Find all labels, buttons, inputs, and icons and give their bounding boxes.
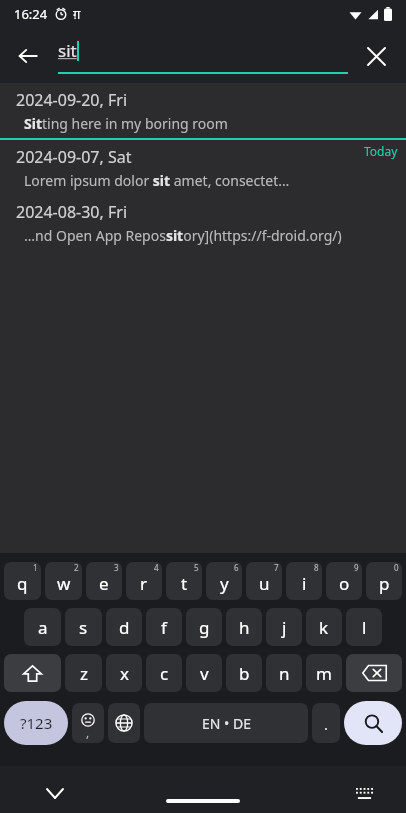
- staticText: m: [316, 662, 332, 685]
- staticText: 7: [274, 562, 279, 573]
- button[interactable]: r: [126, 562, 162, 600]
- button[interactable]: EN • DE: [144, 703, 308, 743]
- button[interactable]: o: [326, 562, 362, 600]
- staticText: sit: [58, 39, 77, 62]
- staticText: z: [80, 662, 88, 685]
- staticText: w: [57, 572, 71, 595]
- staticText: g: [199, 616, 210, 639]
- staticText: 0: [394, 562, 399, 573]
- staticText: a: [38, 616, 48, 639]
- staticText: r: [140, 572, 148, 595]
- button[interactable]: Hide keyboard: [38, 776, 72, 810]
- button[interactable]: a: [24, 608, 61, 646]
- staticText: 6: [234, 562, 239, 573]
- staticText: j: [282, 616, 287, 639]
- button[interactable]: Keyboard settings: [349, 778, 379, 808]
- staticText: 4: [154, 562, 159, 573]
- button[interactable]: g: [186, 608, 222, 646]
- staticText: 2024-09-20, Fri: [16, 89, 128, 111]
- button[interactable]: ?123: [4, 701, 68, 745]
- button[interactable]: Clear: [356, 36, 396, 76]
- staticText: 3: [114, 562, 119, 573]
- staticText: 9: [354, 562, 359, 573]
- staticText: .: [324, 714, 329, 734]
- button[interactable]: t: [166, 562, 202, 600]
- button[interactable]: .: [312, 703, 340, 743]
- staticText: v: [200, 662, 209, 685]
- staticText: k: [319, 616, 329, 639]
- staticText: f: [161, 616, 167, 639]
- button[interactable]: e: [86, 562, 122, 600]
- staticText: p: [379, 572, 390, 595]
- staticText: 2024-08-30, Fri: [16, 201, 128, 223]
- staticText: i: [302, 572, 307, 595]
- staticText: EN • DE: [202, 714, 251, 733]
- button[interactable]: Switch language: [108, 703, 140, 743]
- button[interactable]: d: [106, 608, 142, 646]
- button[interactable]: v: [186, 654, 222, 692]
- button[interactable]: h: [226, 608, 262, 646]
- staticText: x: [120, 662, 129, 685]
- button[interactable]: 2024-08-30, Fri: [0, 195, 406, 250]
- button[interactable]: z: [65, 654, 102, 692]
- button[interactable]: Backspace: [346, 654, 402, 692]
- staticText: 2024-09-07, Sat: [16, 146, 132, 168]
- button[interactable]: Back: [10, 38, 46, 74]
- button[interactable]: m: [306, 654, 342, 692]
- staticText: b: [239, 662, 250, 685]
- staticText: o: [339, 572, 350, 595]
- button[interactable]: q: [4, 562, 41, 600]
- button[interactable]: p: [366, 562, 402, 600]
- staticText: t: [181, 572, 188, 595]
- staticText: 5: [194, 562, 199, 573]
- staticText: y: [220, 572, 229, 595]
- button[interactable]: n: [266, 654, 302, 692]
- button[interactable]: x: [106, 654, 142, 692]
- staticText: 8: [314, 562, 319, 573]
- button[interactable]: y: [206, 562, 242, 600]
- button[interactable]: Shift: [4, 654, 61, 692]
- staticText: e: [99, 572, 109, 595]
- staticText: q: [17, 572, 28, 595]
- button[interactable]: s: [65, 608, 102, 646]
- button[interactable]: w: [45, 562, 82, 600]
- button[interactable]: c: [146, 654, 182, 692]
- staticText: s: [79, 616, 88, 639]
- staticText: …nd Open App Repossitory](https://f-droi…: [24, 226, 342, 245]
- button[interactable]: k: [306, 608, 342, 646]
- staticText: ?123: [20, 713, 53, 733]
- staticText: n: [279, 662, 290, 685]
- staticText: ,: [86, 724, 90, 740]
- button[interactable]: l: [346, 608, 382, 646]
- button[interactable]: 2024-09-07, Sat: [0, 140, 406, 195]
- staticText: u: [259, 572, 270, 595]
- staticText: 16:24: [14, 5, 48, 23]
- button[interactable]: Search: [344, 701, 402, 745]
- staticText: 1: [33, 562, 38, 573]
- staticText: ग़: [73, 5, 81, 23]
- button[interactable]: Emoji: [72, 703, 104, 743]
- button[interactable]: j: [266, 608, 302, 646]
- staticText: Lorem ipsum dolor sit amet, consectet…: [24, 171, 290, 190]
- staticText: h: [239, 616, 250, 639]
- staticText: d: [119, 616, 130, 639]
- staticText: Today: [364, 143, 398, 159]
- button[interactable]: b: [226, 654, 262, 692]
- staticText: c: [160, 662, 169, 685]
- staticText: l: [362, 616, 367, 639]
- staticText: 2: [74, 562, 79, 573]
- button[interactable]: 2024-09-20, Fri: [0, 83, 406, 138]
- staticText: Sitting here in my boring room: [24, 114, 228, 133]
- button[interactable]: u: [246, 562, 282, 600]
- button[interactable]: i: [286, 562, 322, 600]
- button[interactable]: f: [146, 608, 182, 646]
